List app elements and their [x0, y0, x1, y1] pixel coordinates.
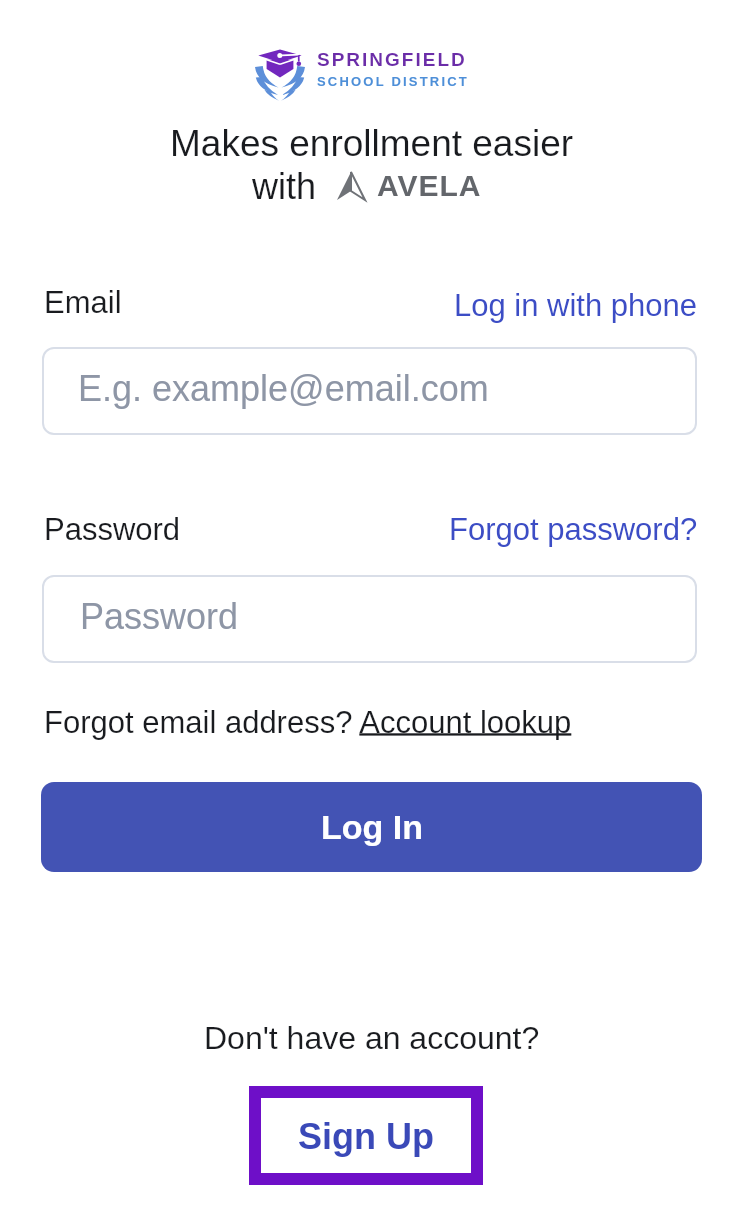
staticText: E.g. example@email.com — [78, 368, 489, 408]
staticText: Password — [80, 596, 239, 636]
button[interactable]: Log in with phone — [454, 288, 698, 323]
staticText: Sign Up — [298, 1116, 434, 1156]
button[interactable]: Forgot password? — [449, 512, 698, 547]
button[interactable]: Sign Up — [249, 1086, 483, 1185]
staticText: Don't have an account? — [204, 1020, 540, 1056]
staticText: Makes enrollment easier — [170, 123, 574, 164]
staticText: AVELA — [377, 169, 482, 203]
staticText: with — [252, 166, 317, 206]
staticText: Log In — [321, 808, 423, 846]
button[interactable]: Forgot email address? Account lookup — [44, 705, 572, 740]
button[interactable]: E.g. example@email.com — [42, 347, 697, 435]
staticText: SPRINGFIELD — [317, 49, 467, 70]
staticText: Email — [44, 285, 122, 320]
staticText: SCHOOL DISTRICT — [317, 74, 469, 89]
button[interactable]: Log In — [41, 782, 702, 872]
button[interactable]: Password — [42, 575, 697, 663]
staticText: Password — [44, 512, 181, 547]
